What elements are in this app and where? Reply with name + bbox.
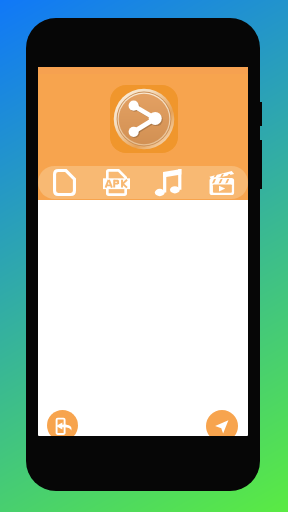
button[interactable]: Videos [195, 166, 248, 199]
button[interactable]: App logo [110, 85, 178, 153]
button[interactable]: Music [142, 166, 195, 199]
button[interactable]: Send file [206, 410, 238, 436]
button[interactable]: Documents [38, 166, 90, 199]
button[interactable]: APK files [90, 166, 142, 199]
button[interactable]: Receive file [47, 410, 78, 436]
